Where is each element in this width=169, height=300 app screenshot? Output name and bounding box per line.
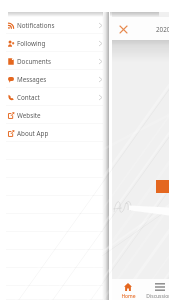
button[interactable]: About App	[0, 124, 103, 142]
button[interactable]: Messages	[0, 70, 103, 88]
button[interactable]: Close	[115, 21, 131, 37]
button[interactable]: Home	[112, 279, 144, 300]
staticText: Documents	[17, 57, 51, 66]
button[interactable]: Contact	[0, 88, 103, 106]
staticText: Following	[17, 39, 46, 48]
button[interactable]: Documents	[0, 52, 103, 70]
button[interactable]: Following	[0, 34, 103, 52]
staticText: Messages	[17, 75, 47, 84]
staticText: Website	[17, 111, 41, 120]
button[interactable]: Website	[0, 106, 103, 124]
staticText: 2020 Annual	[156, 25, 169, 34]
staticText: Home	[121, 293, 136, 300]
button[interactable]: Discussions	[144, 279, 169, 300]
staticText: About App	[17, 129, 49, 138]
staticText: Discussions	[146, 293, 169, 300]
staticText: Notifications	[17, 21, 55, 30]
staticText: Contact	[17, 93, 40, 102]
button[interactable]: Notifications	[0, 16, 103, 34]
